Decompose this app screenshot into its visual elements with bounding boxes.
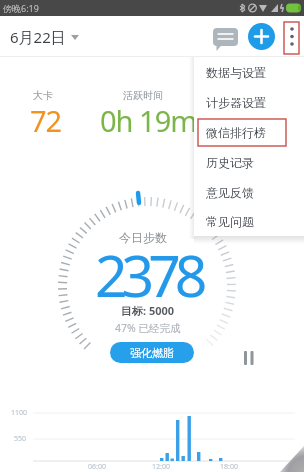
button[interactable]: 强化燃脂 — [110, 342, 194, 363]
staticText: 大卡 — [33, 89, 53, 102]
staticText: 1100 — [11, 408, 28, 418]
staticText: 常见问题 — [206, 214, 254, 229]
button[interactable] — [248, 23, 275, 50]
staticText: 今日步数 — [119, 230, 167, 245]
staticText: 47% 已经完成 — [115, 321, 181, 335]
staticText: 计步器设置 — [206, 95, 266, 110]
button[interactable]: 意见反馈 — [194, 177, 304, 207]
staticText: 数据与设置 — [206, 65, 266, 80]
staticText: 目标: 5000 — [121, 303, 175, 318]
staticText: 12:00 — [152, 462, 170, 472]
staticText: 550 — [14, 434, 27, 444]
staticText: 公里 — [233, 89, 253, 102]
button[interactable] — [210, 26, 240, 54]
button[interactable]: 历史记录 — [194, 147, 304, 177]
staticText: 历史记录 — [206, 155, 254, 170]
staticText: 1.6 — [224, 101, 262, 140]
staticText: 2378 — [95, 236, 202, 314]
staticText: 06:00 — [88, 462, 106, 472]
button[interactable]: 6月22日 — [10, 27, 79, 47]
staticText: 强化燃脂 — [130, 346, 174, 360]
button[interactable] — [283, 20, 300, 53]
button[interactable]: 计步器设置 — [194, 87, 304, 117]
button[interactable]: 常见问题 — [194, 207, 304, 236]
button[interactable]: 微信排行榜 — [194, 117, 304, 147]
staticText: 微信排行榜 — [206, 125, 266, 140]
button[interactable]: 数据与设置 — [194, 57, 304, 87]
staticText: 18:00 — [220, 462, 238, 472]
staticText: 6月22日 — [10, 27, 66, 47]
staticText: 活跃时间 — [123, 89, 163, 102]
staticText: 0h 19m — [100, 101, 197, 140]
staticText: 意见反馈 — [206, 185, 254, 200]
staticText: 72 — [30, 101, 62, 140]
staticText: 傍晚6:19 — [3, 2, 39, 14]
button[interactable] — [238, 345, 261, 371]
